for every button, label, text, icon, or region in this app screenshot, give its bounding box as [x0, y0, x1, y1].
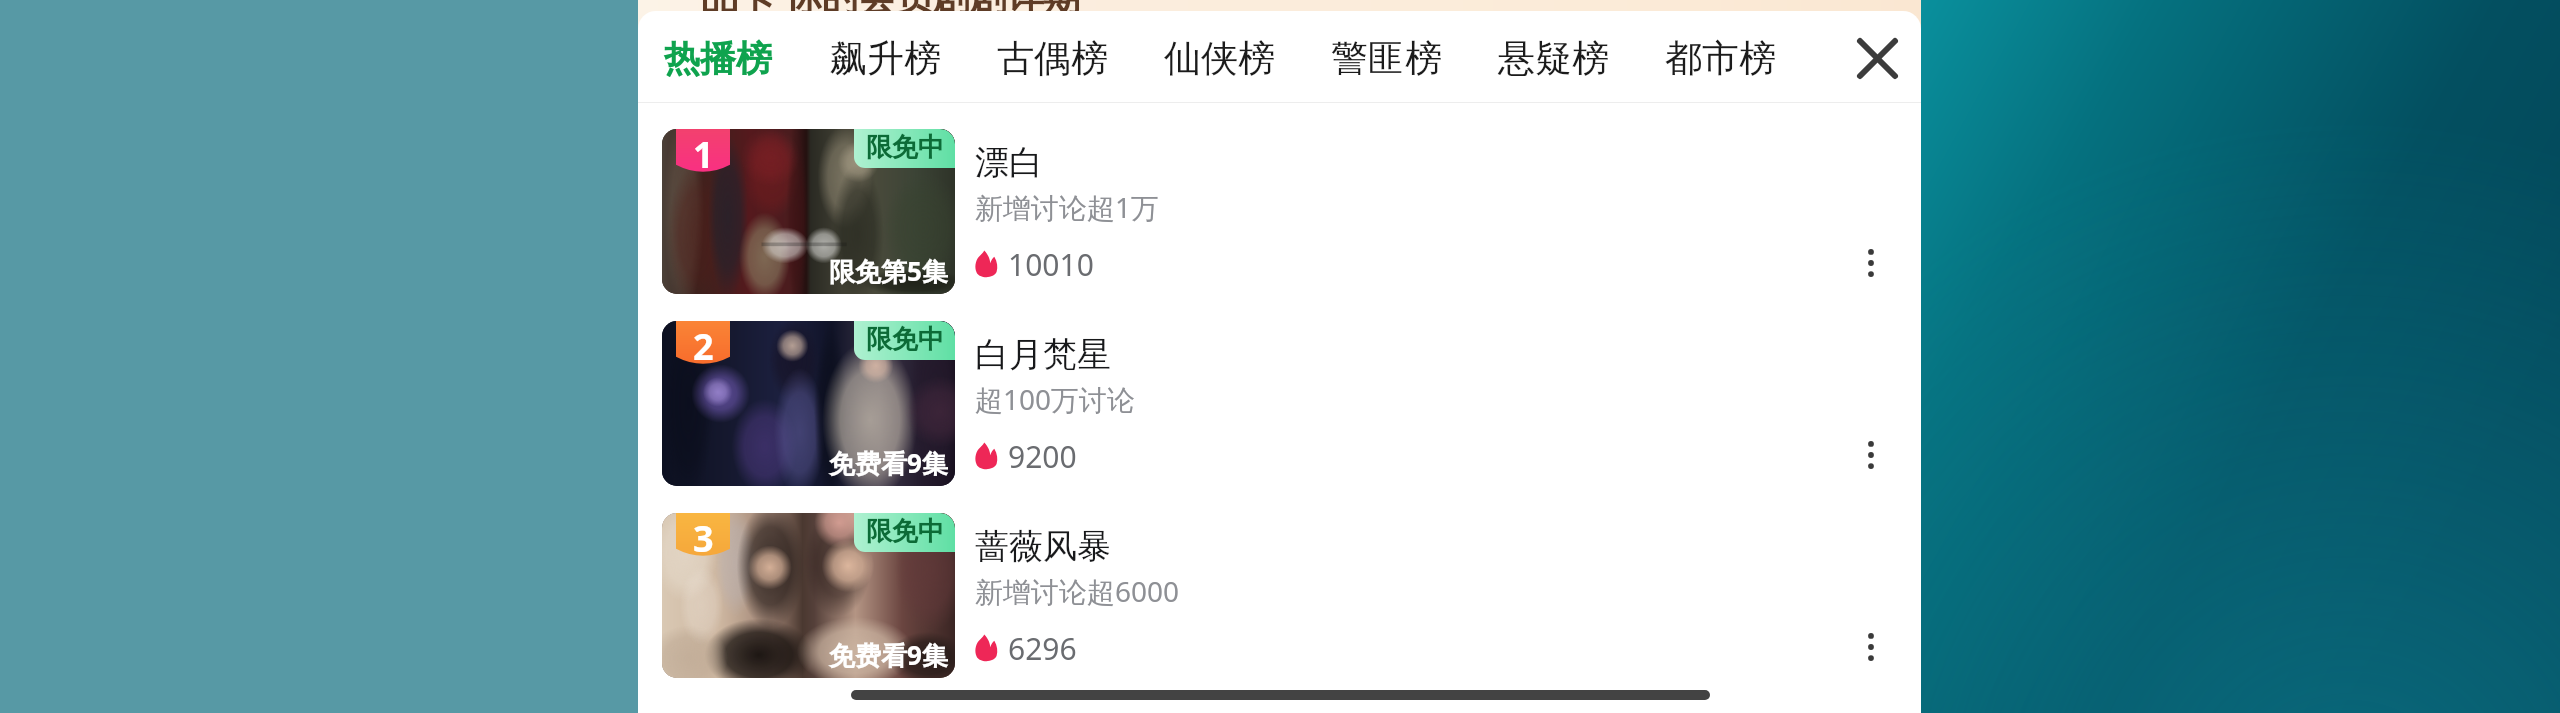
- staticText: 免费看9集: [829, 445, 948, 481]
- staticText: 漂白: [975, 141, 1043, 184]
- button[interactable]: 警匪榜: [1307, 20, 1465, 96]
- staticText: 限免第5集: [829, 253, 948, 289]
- staticText: 都市榜: [1665, 35, 1776, 82]
- staticText: 1: [693, 130, 714, 168]
- staticText: 新增讨论超6000: [975, 572, 1180, 610]
- staticText: 蔷薇风暴: [975, 525, 1111, 568]
- button[interactable]: 悬疑榜: [1474, 20, 1632, 96]
- staticText: 新增讨论超1万: [975, 188, 1160, 226]
- button[interactable]: More options: [1827, 400, 1915, 510]
- staticText: 白月梵星: [975, 333, 1111, 376]
- staticText: 古偶榜: [997, 35, 1108, 82]
- staticText: 限免中: [866, 323, 944, 356]
- button[interactable]: 1: [638, 129, 1921, 321]
- staticText: 10010: [1008, 244, 1094, 285]
- button[interactable]: 2: [638, 321, 1921, 513]
- button[interactable]: More options: [1827, 208, 1915, 318]
- button[interactable]: Close: [1835, 16, 1919, 100]
- button[interactable]: 飙升榜: [806, 20, 964, 96]
- button[interactable]: More options: [1827, 592, 1915, 702]
- staticText: 仙侠榜: [1164, 35, 1275, 82]
- staticText: 免费看9集: [829, 637, 948, 673]
- staticText: 3: [693, 514, 714, 552]
- staticText: 品卡 你的会员剧剧详期: [701, 0, 1081, 21]
- button[interactable]: 热播榜: [639, 20, 797, 96]
- staticText: 飙升榜: [830, 35, 941, 82]
- staticText: 热播榜: [664, 36, 772, 81]
- staticText: 9200: [1008, 436, 1077, 477]
- staticText: 超100万讨论: [975, 380, 1136, 418]
- staticText: 限免中: [866, 515, 944, 548]
- button[interactable]: 古偶榜: [973, 20, 1131, 96]
- button[interactable]: 都市榜: [1641, 20, 1799, 96]
- staticText: 警匪榜: [1331, 35, 1442, 82]
- button[interactable]: 仙侠榜: [1140, 20, 1298, 96]
- staticText: 6296: [1008, 628, 1077, 669]
- button[interactable]: 3: [638, 513, 1921, 705]
- staticText: 2: [693, 322, 714, 360]
- staticText: 限免中: [866, 131, 944, 164]
- staticText: 悬疑榜: [1498, 35, 1609, 82]
